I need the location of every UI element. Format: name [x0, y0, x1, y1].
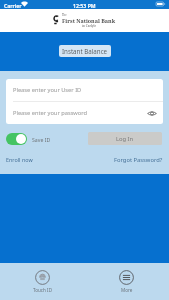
- staticText: Save ID: [32, 136, 51, 143]
- staticText: The: [62, 13, 67, 17]
- button[interactable]: Save ID: [6, 132, 51, 145]
- other: Wi-Fi: [21, 2, 28, 7]
- staticText: Instant Balance: [62, 47, 108, 55]
- staticText: Please enter your User ID: [13, 86, 82, 94]
- button[interactable]: Please enter your password: [6, 102, 163, 124]
- staticText: First National Bank: [62, 17, 116, 24]
- button[interactable]: Please enter your User ID: [6, 79, 163, 101]
- staticText: Log In: [116, 135, 134, 143]
- staticText: Carrier: [4, 2, 22, 9]
- staticText: Please enter your password: [13, 109, 87, 117]
- button[interactable]: Enroll now: [6, 156, 33, 163]
- button[interactable]: More: [84, 263, 169, 293]
- staticText: in Carlyle: [82, 24, 97, 28]
- staticText: Forgot Password?: [114, 156, 163, 164]
- other: Show password: [147, 110, 157, 117]
- staticText: Enroll now: [6, 156, 33, 163]
- button[interactable]: Forgot Password?: [114, 156, 163, 164]
- button[interactable]: Log In: [88, 132, 162, 145]
- button[interactable]: Touch ID: [0, 263, 84, 293]
- staticText: 12:53 PM: [73, 2, 96, 9]
- staticText: Touch ID: [33, 287, 52, 293]
- button[interactable]: Instant Balance: [59, 45, 111, 57]
- staticText: More: [121, 287, 133, 293]
